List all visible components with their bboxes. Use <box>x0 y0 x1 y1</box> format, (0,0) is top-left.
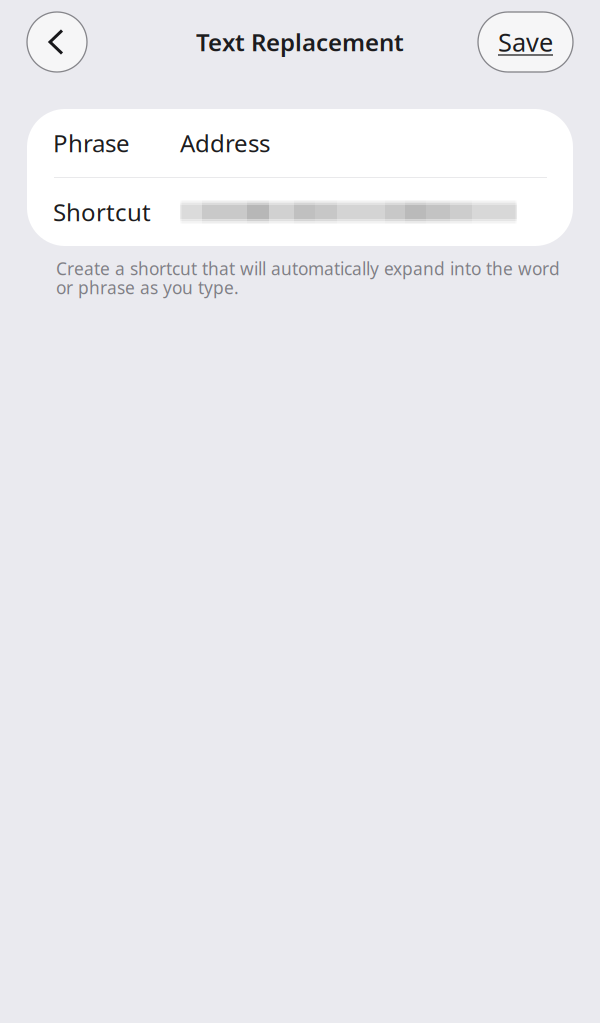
staticText: Phrase <box>53 127 130 159</box>
staticText: Save <box>498 25 553 59</box>
staticText: Address <box>180 127 270 159</box>
button[interactable]: Save <box>478 12 573 72</box>
staticText: Shortcut <box>53 196 151 228</box>
button[interactable]: Phrase <box>27 109 573 177</box>
staticText: Text Replacement <box>196 26 404 58</box>
button[interactable]: Back <box>27 12 87 72</box>
staticText: Create a shortcut that will automaticall… <box>56 257 560 299</box>
button[interactable]: Shortcut <box>27 178 573 246</box>
